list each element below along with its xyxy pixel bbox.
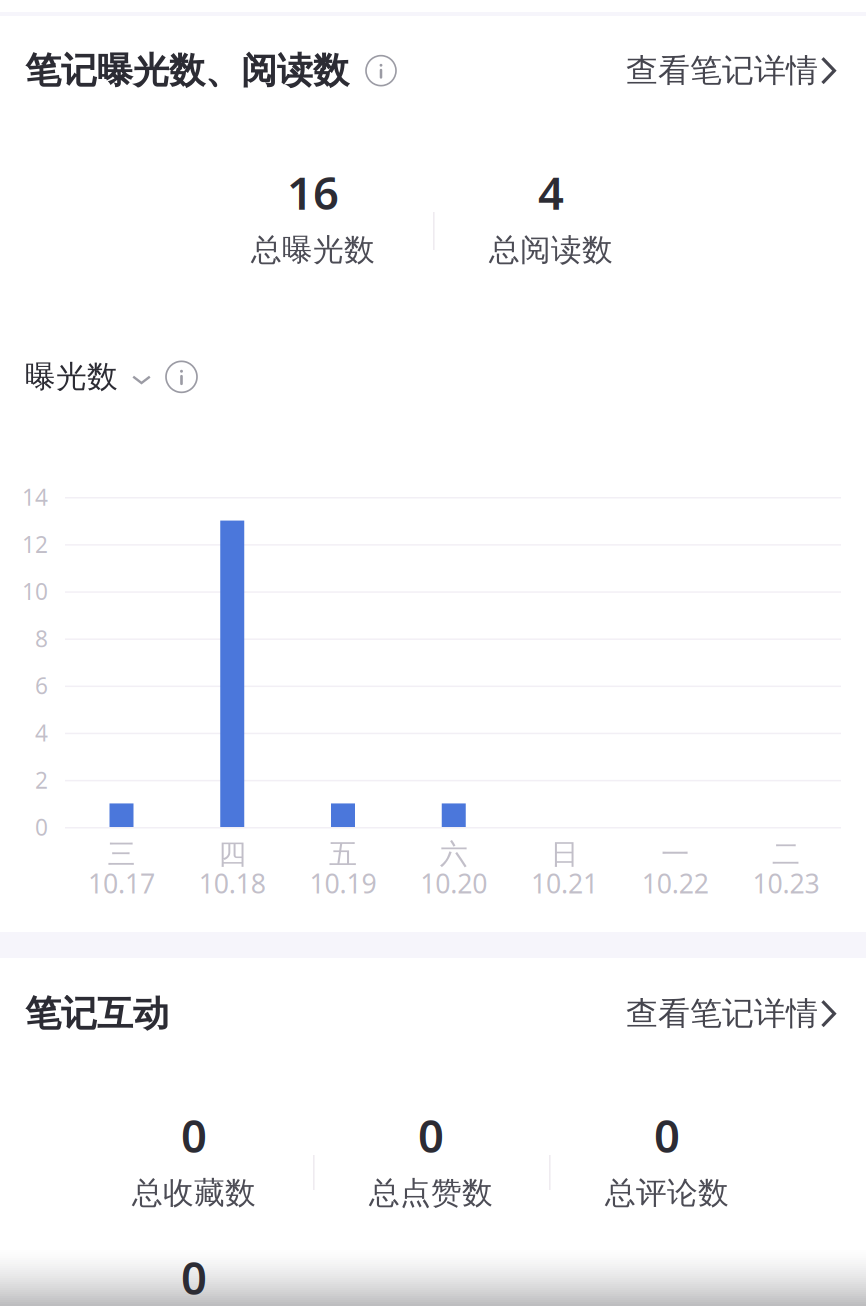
staticText: 总阅读数 <box>489 231 613 269</box>
staticText: 10.19 <box>309 865 376 901</box>
staticText: 6 <box>35 670 48 701</box>
staticText: 0 <box>181 1247 207 1306</box>
staticText: 六 <box>440 837 468 871</box>
staticText: 总评论数 <box>605 1174 729 1212</box>
staticText: 五 <box>329 837 357 871</box>
staticText: 14 <box>22 482 48 512</box>
staticText: 10.18 <box>199 865 266 901</box>
staticText: 总点赞数 <box>369 1174 493 1212</box>
staticText: 查看笔记详情 <box>626 994 818 1033</box>
staticText: 12 <box>22 529 48 559</box>
staticText: 查看笔记详情 <box>626 51 818 90</box>
staticText: 二 <box>772 837 800 871</box>
staticText: 一 <box>661 837 689 871</box>
staticText: 四 <box>218 837 246 871</box>
staticText: 10.20 <box>420 865 487 901</box>
staticText: 曝光数 <box>25 358 118 396</box>
staticText: 10.23 <box>752 865 819 901</box>
staticText: 10.17 <box>88 865 155 901</box>
staticText: 0 <box>181 1105 207 1165</box>
staticText: 0 <box>654 1105 680 1165</box>
staticText: 总曝光数 <box>251 231 375 269</box>
staticText: 总收藏数 <box>132 1174 256 1212</box>
staticText: 10 <box>22 576 48 606</box>
button[interactable]: 曝光数 <box>25 348 197 406</box>
staticText: 10.21 <box>531 865 598 901</box>
button[interactable]: 曝光数与阅读数说明 <box>349 48 404 94</box>
button[interactable]: 查看笔记详情 <box>612 41 836 100</box>
staticText: 4 <box>35 718 48 748</box>
staticText: 三 <box>107 837 135 871</box>
staticText: 0 <box>418 1105 444 1165</box>
staticText: 8 <box>35 623 48 653</box>
staticText: 笔记曝光数、阅读数 <box>25 48 349 93</box>
button[interactable]: 查看笔记详情 <box>612 984 836 1043</box>
staticText: 笔记互动 <box>25 991 169 1036</box>
staticText: 0 <box>35 812 48 842</box>
staticText: 2 <box>35 765 48 795</box>
staticText: 16 <box>287 162 339 222</box>
staticText: 4 <box>538 162 564 222</box>
staticText: 日 <box>550 837 578 871</box>
staticText: 10.22 <box>642 865 709 901</box>
